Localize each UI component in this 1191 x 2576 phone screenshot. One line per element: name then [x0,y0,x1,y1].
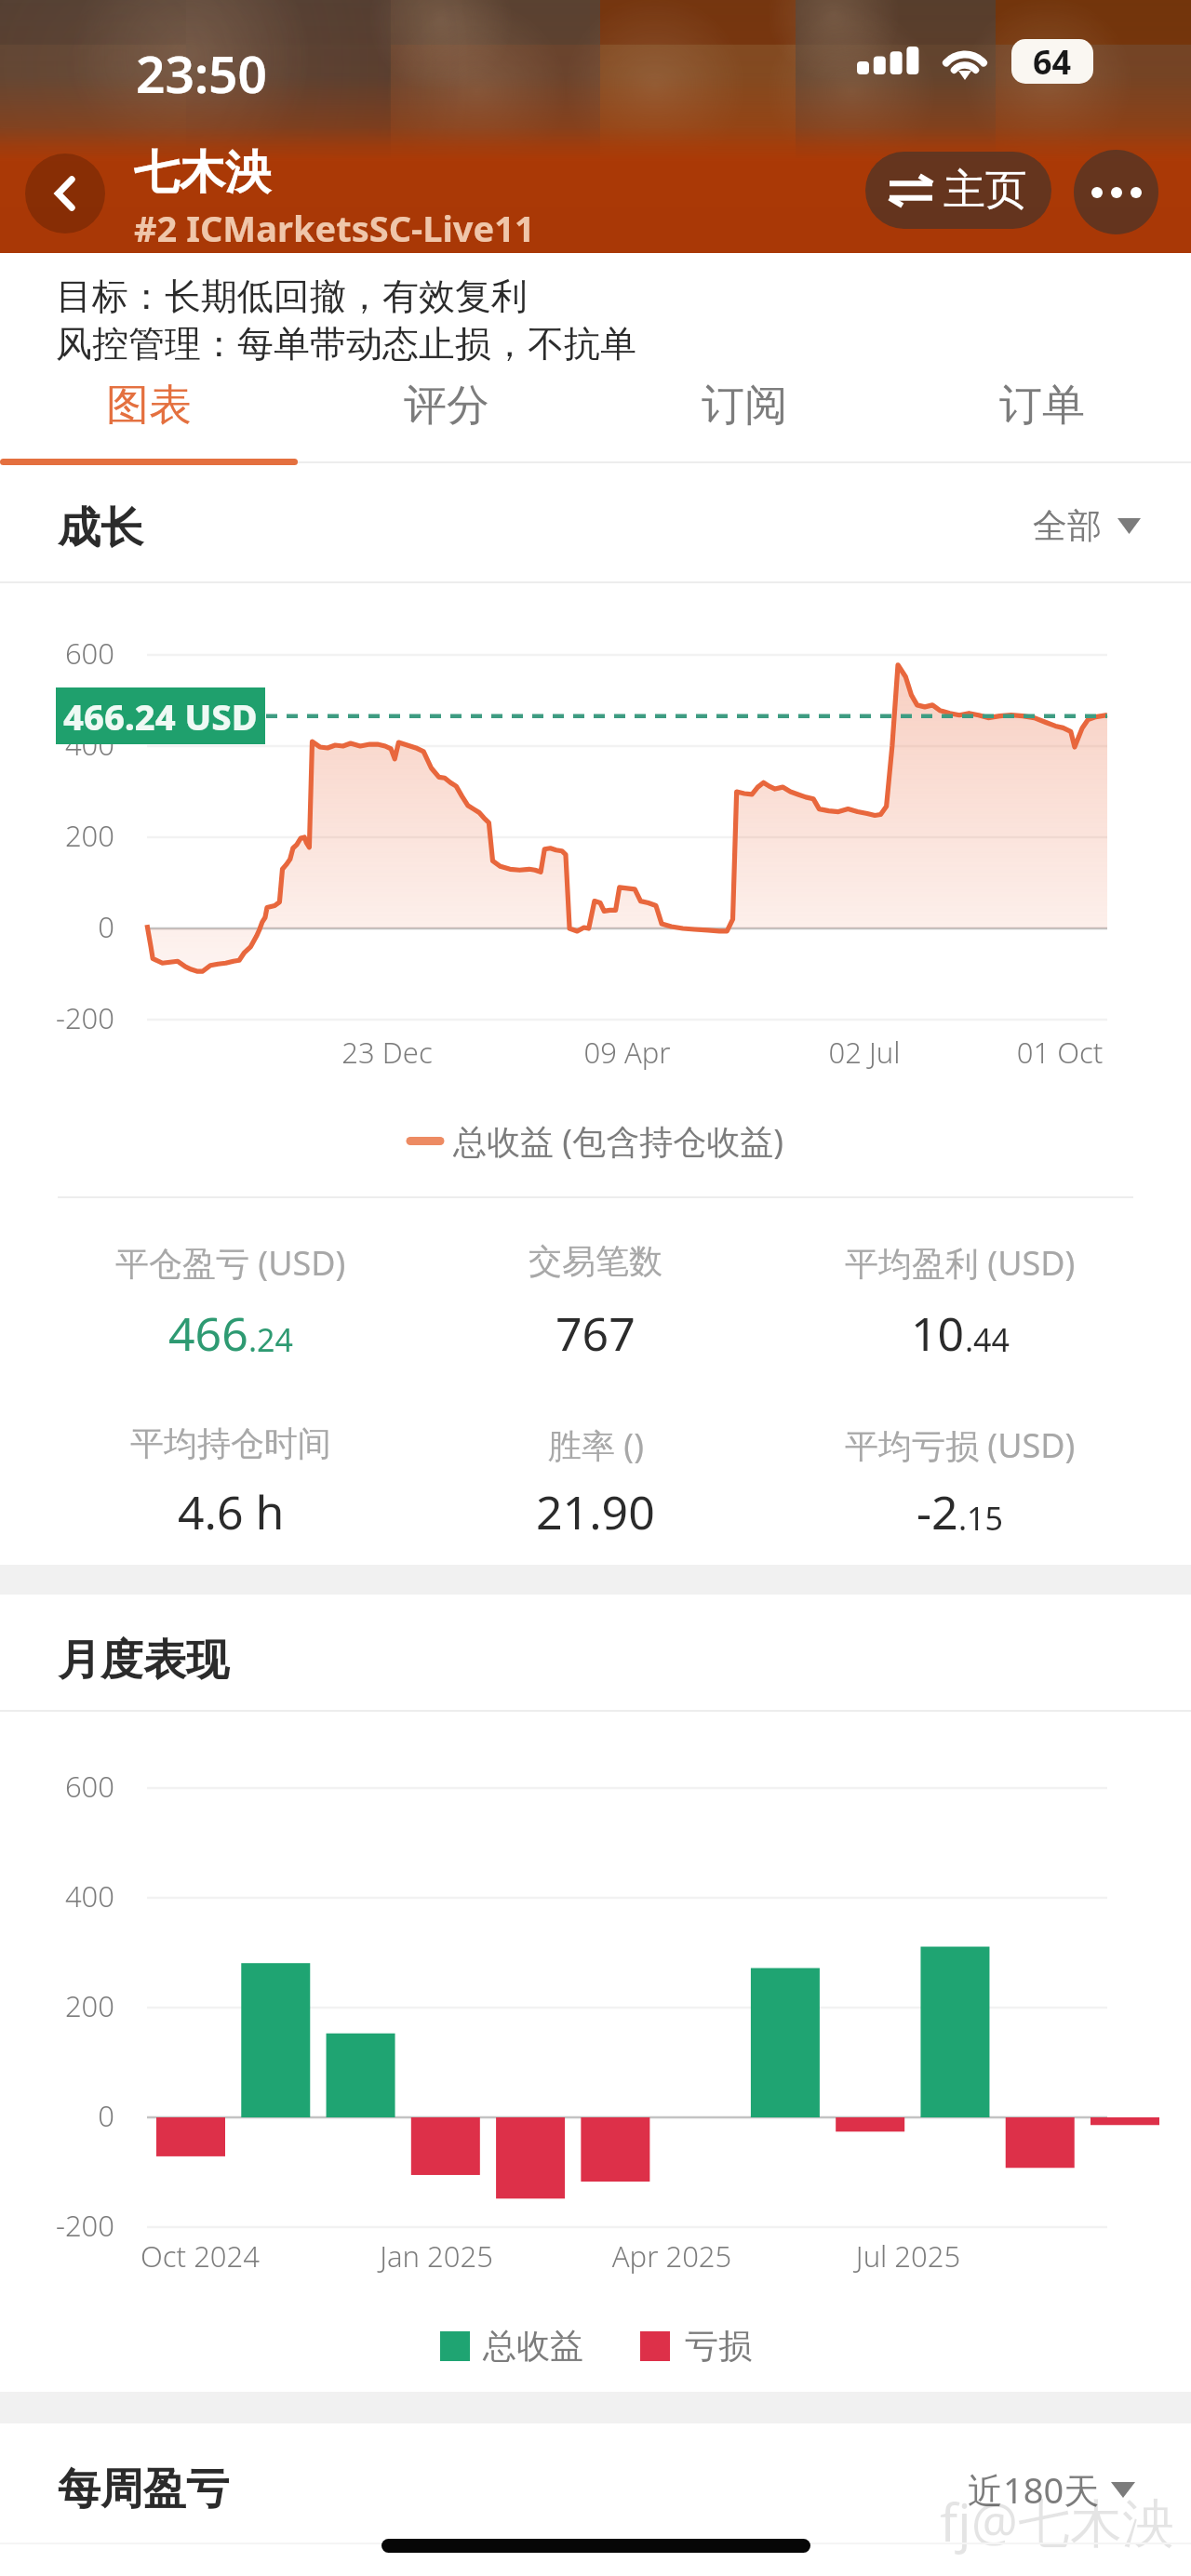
staticText: 目标：长期低回撤，有效复利 [56,274,528,319]
staticText: 600 [0,634,114,673]
staticText: .15 [958,1497,1004,1540]
button[interactable]: 全部 [1033,504,1141,548]
staticText: 600 [0,1767,114,1806]
staticText: 01 Oct [948,1033,1171,1072]
staticText: -200 [0,2206,114,2245]
staticText: 总收益 (包含持仓收益) [453,1118,783,1164]
staticText: 64 [1033,39,1072,84]
staticText: 平均盈利 (USD) [845,1240,1076,1286]
staticText: 21.90 [536,1480,655,1543]
staticText: 10 [911,1301,965,1365]
staticText: 交易笔数 [529,1240,662,1282]
staticText: 466.24 USD [63,692,258,741]
staticText: 767 [555,1301,636,1365]
staticText: 平仓盈亏 (USD) [115,1240,346,1286]
staticText: 亏损 [685,2325,752,2367]
staticText: 近180天 [968,2465,1100,2514]
staticText: -2 [917,1480,958,1543]
staticText: 订阅 [702,379,787,433]
staticText: -200 [0,998,114,1037]
staticText: 200 [0,816,114,855]
staticText: 09 Apr [515,1033,739,1072]
staticText: #2 ICMarketsSC-Live11 [134,204,535,252]
staticText: 订单 [999,379,1085,433]
staticText: 总收益 [483,2325,583,2367]
staticText: 每周盈亏 [58,2463,229,2516]
staticText: Jan 2025 [325,2236,548,2276]
staticText: 图表 [106,379,192,433]
staticText: 0 [0,907,114,946]
button[interactable]: 主页 [865,152,1051,229]
staticText: 平均亏损 (USD) [845,1422,1076,1468]
staticText: .24 [248,1318,294,1361]
button[interactable]: 订单 [893,378,1191,434]
staticText: 评分 [404,379,489,433]
staticText: 23:50 [136,38,268,108]
button[interactable]: Back [25,153,105,234]
staticText: 成长 [58,501,143,555]
staticText: Oct 2024 [88,2236,312,2276]
staticText: 平均持仓时间 [130,1422,331,1464]
button[interactable]: 近180天 [968,2465,1135,2514]
staticText: 400 [0,1876,114,1915]
staticText: .44 [965,1318,1010,1361]
staticText: 200 [0,1986,114,2025]
staticText: 400 [0,725,114,764]
staticText: 月度表现 [58,1634,229,1688]
staticText: Apr 2025 [560,2236,783,2276]
staticText: 4.6 h [178,1480,285,1543]
button[interactable]: 订阅 [595,378,893,434]
staticText: 主页 [943,164,1027,217]
staticText: 23 Dec [275,1033,499,1072]
button[interactable]: 图表 [0,378,298,434]
staticText: 全部 [1033,504,1102,548]
staticText: Jul 2025 [796,2236,1020,2276]
staticText: 466 [168,1301,248,1365]
staticText: fj@七木泱 [940,2486,1175,2556]
button[interactable]: More options [1074,150,1158,234]
staticText: 02 Jul [753,1033,976,1072]
staticText: 胜率 () [548,1422,644,1468]
staticText: 七木泱 [134,144,271,202]
staticText: 0 [0,2096,114,2135]
staticText: 风控管理：每单带动态止损，不抗单 [56,321,636,367]
button[interactable]: 评分 [298,378,595,434]
